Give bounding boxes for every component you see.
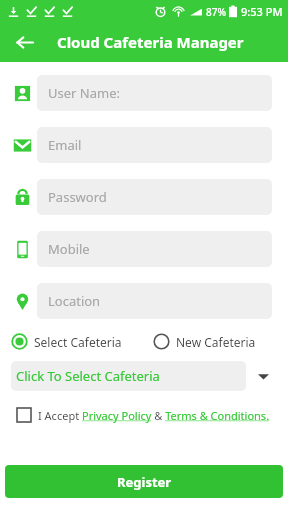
staticText: Password [48, 188, 107, 206]
button[interactable]: Open cafeteria list [246, 361, 280, 391]
button[interactable]: Register [5, 465, 283, 498]
button[interactable]: Select Cafeteria [11, 333, 122, 350]
button[interactable]: Password [37, 179, 272, 215]
staticText: Mobile [48, 240, 90, 258]
button[interactable]: Accept terms checkbox [14, 405, 34, 425]
button[interactable]: Click To Select Cafeteria [11, 361, 246, 391]
button[interactable]: User Name: [37, 75, 272, 111]
staticText: User Name: [48, 84, 120, 102]
staticText: Click To Select Cafeteria [16, 367, 160, 385]
staticText: New Cafeteria [176, 334, 256, 350]
button[interactable]: Back [8, 26, 40, 58]
button[interactable]: I Accept Privacy Policy & Terms & Condit… [38, 408, 270, 423]
button[interactable]: New Cafeteria [153, 333, 256, 350]
staticText: Select Cafeteria [34, 334, 122, 350]
button[interactable]: Location [37, 283, 272, 319]
staticText: Register [117, 473, 172, 491]
staticText: 9:53 PM [241, 4, 283, 19]
staticText: Email [48, 136, 82, 154]
staticText: 87% [206, 5, 226, 19]
button[interactable]: Mobile [37, 231, 272, 267]
staticText: Location [48, 292, 101, 310]
button[interactable]: Email [37, 127, 272, 163]
staticText: Cloud Cafeteria Manager [57, 32, 244, 52]
